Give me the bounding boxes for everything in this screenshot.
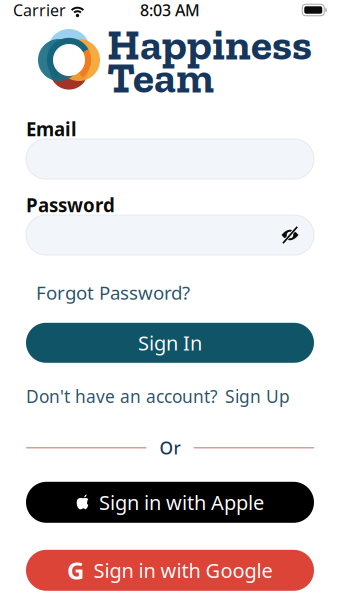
staticText: Team xyxy=(107,51,214,103)
staticText: Forgot Password? xyxy=(36,280,190,305)
staticText: Carrier xyxy=(13,0,66,21)
staticText: Don't have an account? xyxy=(26,385,218,408)
button[interactable]: Sign Up xyxy=(225,385,290,408)
staticText: 8:03 AM xyxy=(140,0,200,21)
staticText: Email xyxy=(26,117,77,141)
button[interactable]: Sign in with Apple xyxy=(26,482,314,523)
staticText: Or xyxy=(159,436,180,459)
button[interactable]: G xyxy=(26,550,314,591)
staticText: G xyxy=(67,554,84,586)
button[interactable]: Show password xyxy=(281,226,299,244)
staticText: Sign in with Apple xyxy=(99,489,264,516)
button[interactable]: Forgot Password? xyxy=(36,280,190,305)
staticText: Sign Up xyxy=(225,385,290,408)
staticText: Sign in with Google xyxy=(93,557,272,584)
staticText: Password xyxy=(26,193,115,217)
staticText: Sign In xyxy=(138,329,202,356)
button[interactable]: Sign In xyxy=(26,323,314,363)
staticText: Happiness xyxy=(107,18,312,70)
